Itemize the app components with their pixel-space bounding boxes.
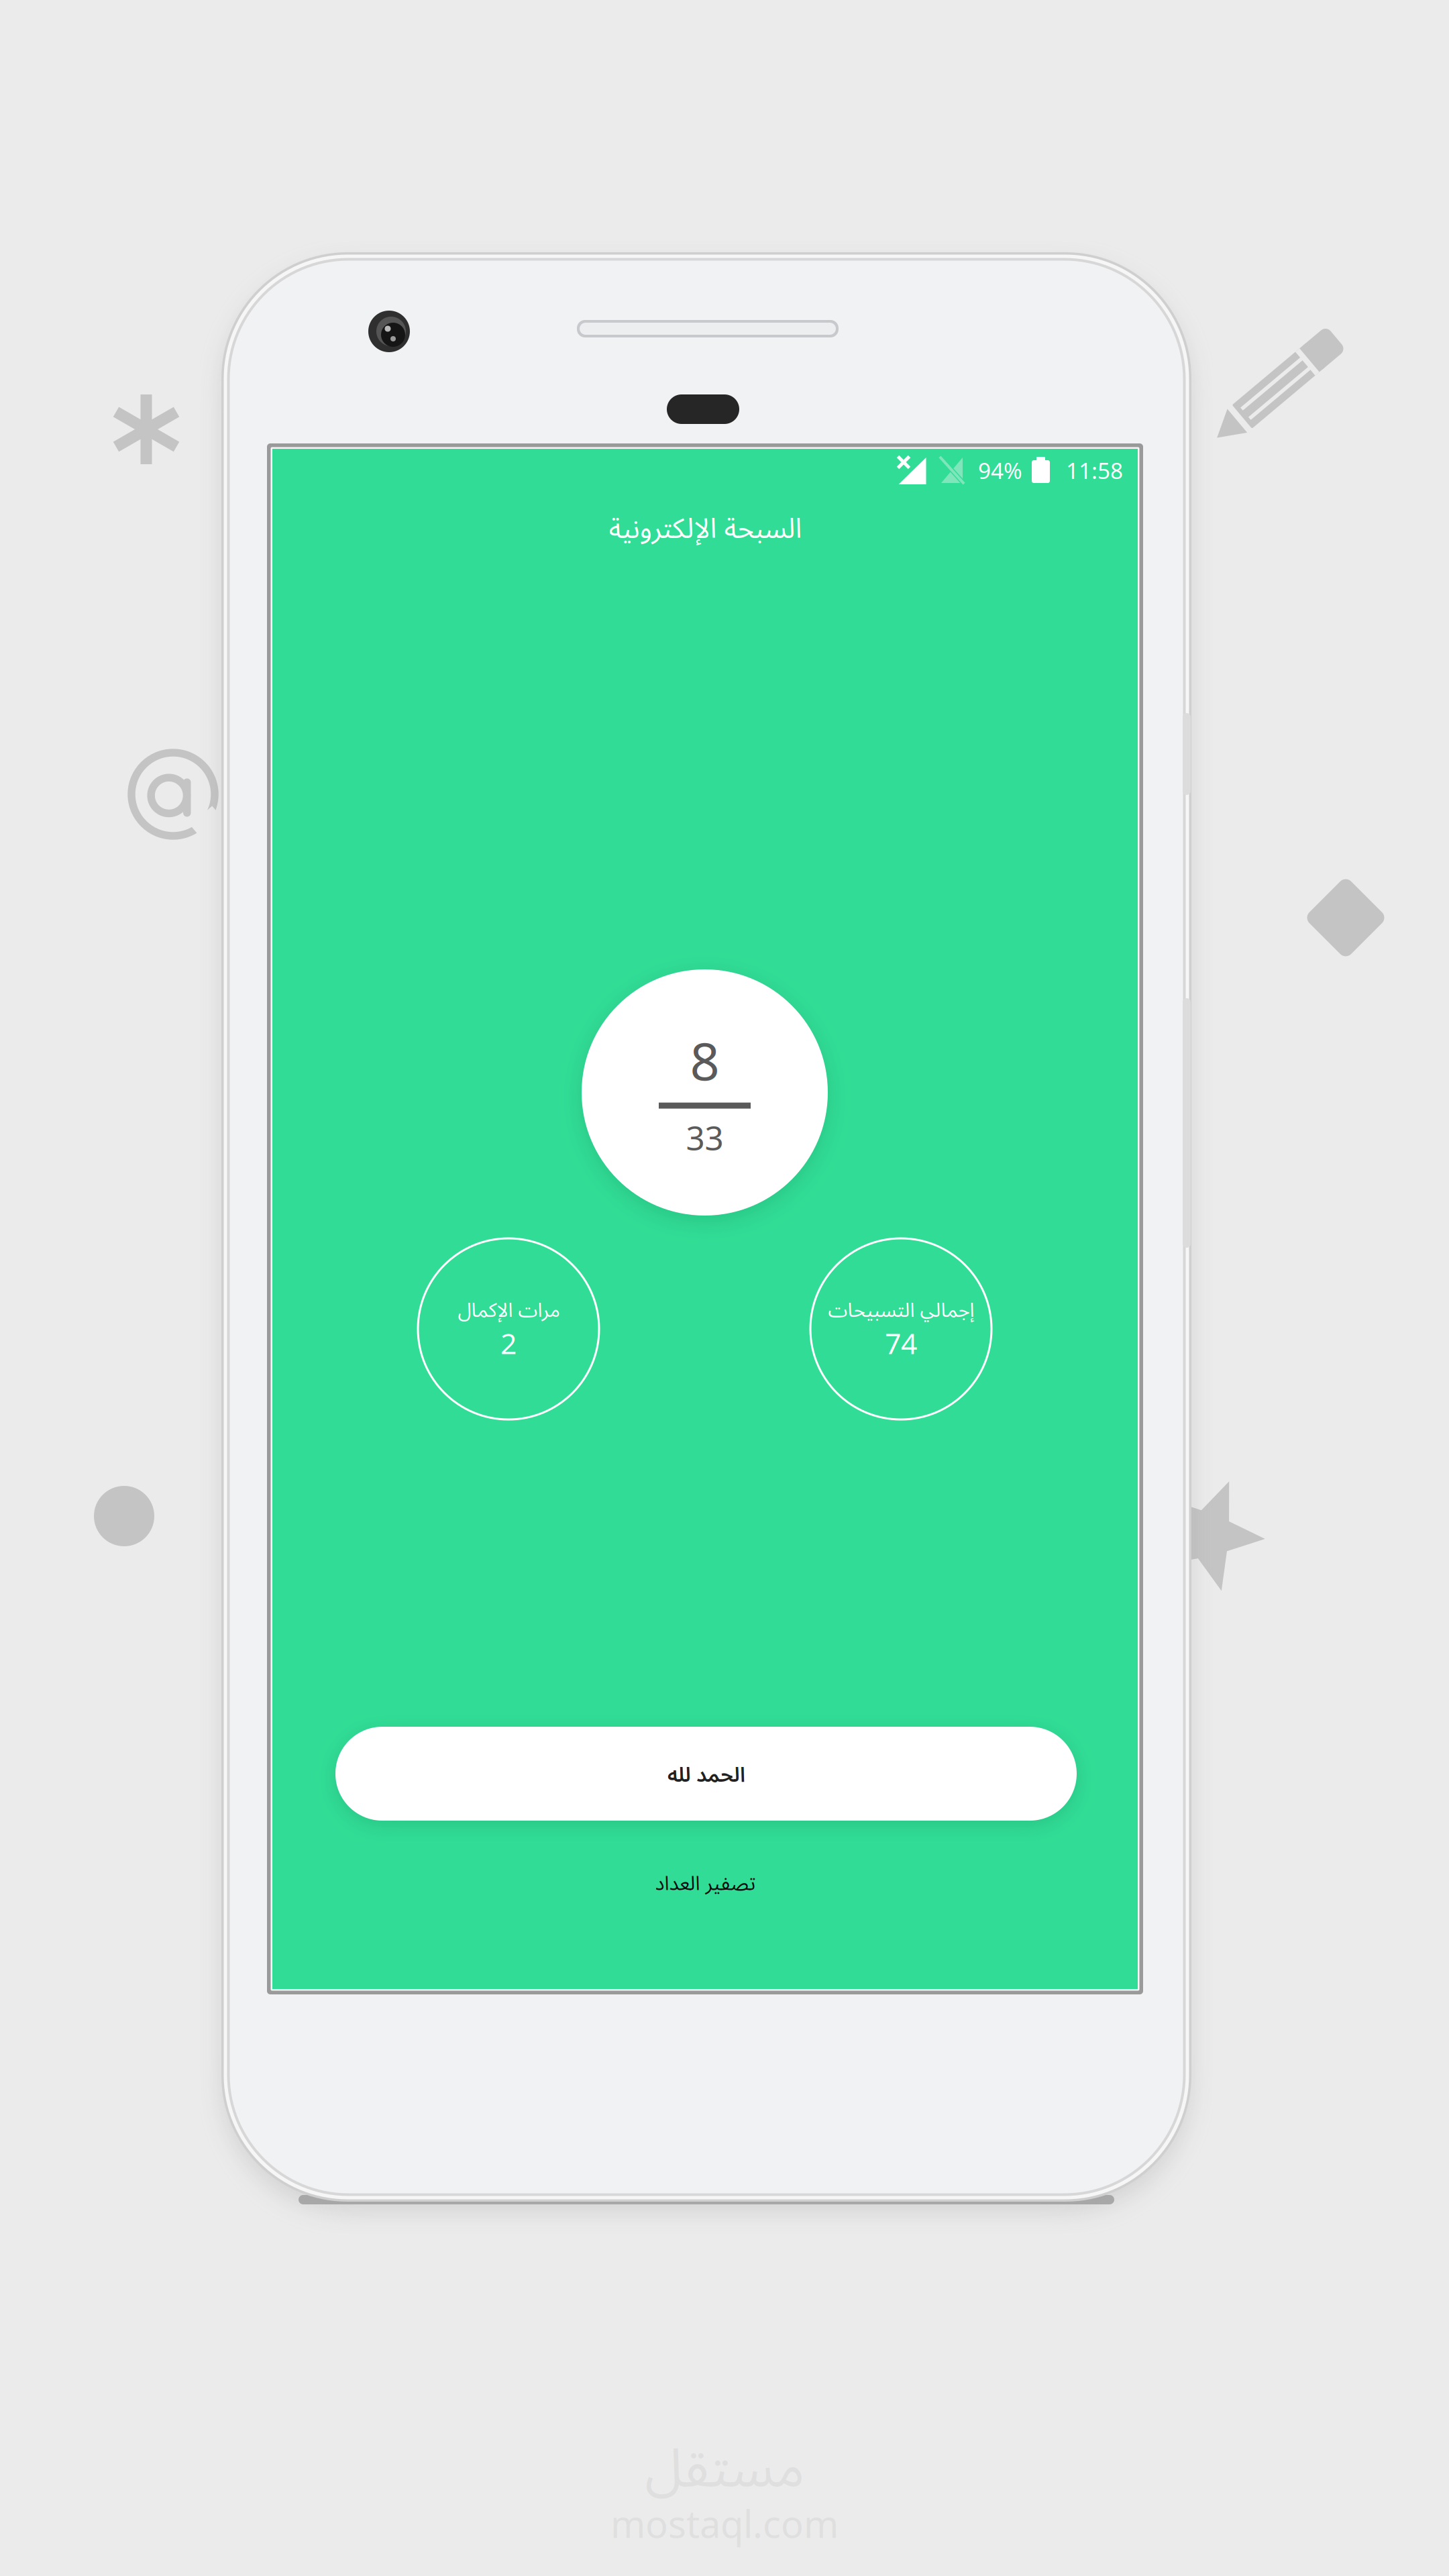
staticText: السبحة الإلكترونية (608, 508, 802, 546)
button[interactable]: Tasbih counter, 8 of 33 (582, 969, 828, 1216)
button[interactable]: الحمد لله (335, 1727, 1077, 1821)
button[interactable]: Total tasbih, 74 (810, 1238, 991, 1419)
staticText: تصفير العداد (655, 1869, 755, 1896)
staticText: 8 (690, 1026, 719, 1095)
staticText: مرات الإكمال (458, 1296, 559, 1323)
staticText: 33 (686, 1115, 723, 1159)
staticText: 74 (885, 1324, 917, 1362)
staticText: 94% (978, 455, 1022, 485)
staticText: مستقل (645, 2429, 804, 2502)
button[interactable]: Completed rounds, 2 (418, 1238, 599, 1419)
button[interactable]: تصفير العداد (272, 1861, 1138, 1904)
staticText: 2 (500, 1324, 517, 1362)
staticText: الحمد لله (667, 1760, 745, 1788)
staticText: mostaql.com (610, 2498, 839, 2548)
staticText: إجمالي التسبيحات (828, 1296, 974, 1323)
staticText: 11:58 (1066, 455, 1123, 485)
